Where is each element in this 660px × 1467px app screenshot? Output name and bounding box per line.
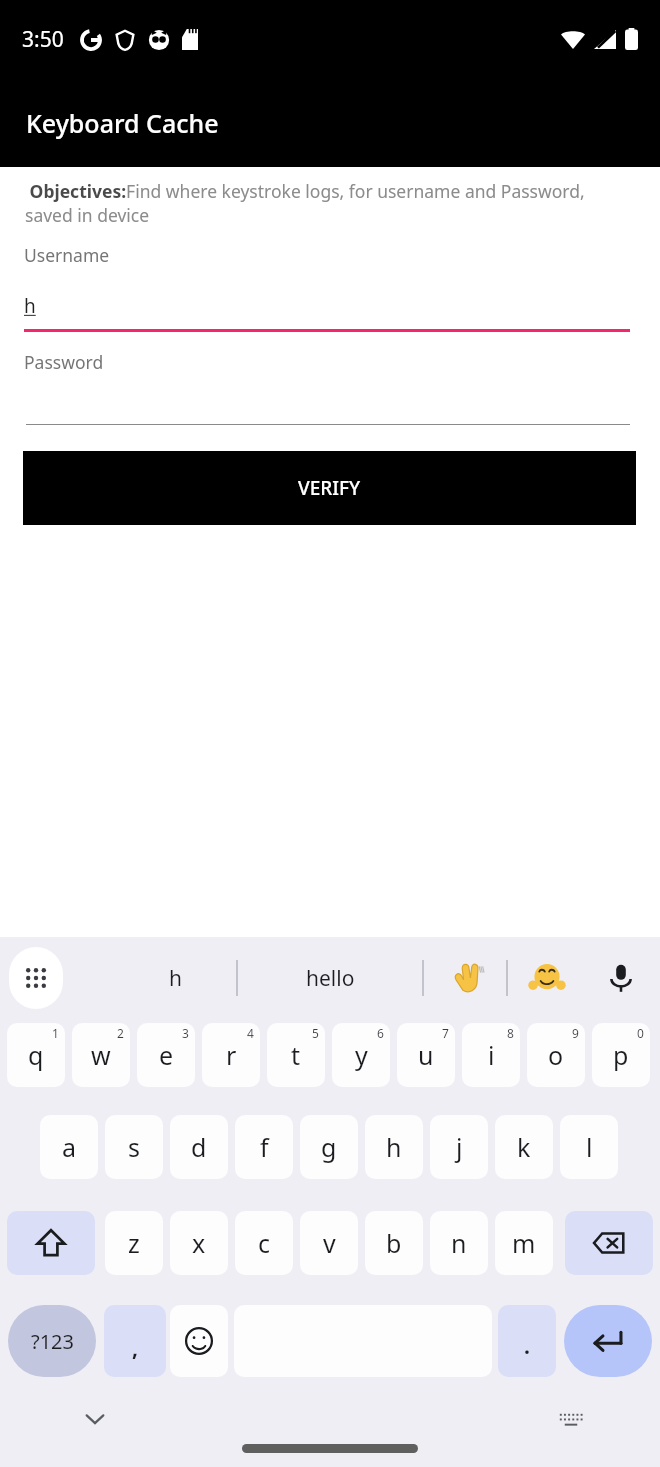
staticText: s — [128, 1130, 140, 1164]
staticText: g — [321, 1130, 337, 1164]
button[interactable]: s — [105, 1115, 163, 1179]
staticText: o — [548, 1038, 564, 1072]
staticText: m — [512, 1226, 536, 1260]
staticText: Username — [24, 243, 110, 267]
button[interactable]: f — [235, 1115, 293, 1179]
button[interactable]: h — [120, 943, 230, 1013]
button[interactable]: g — [300, 1115, 358, 1179]
staticText: VERIFY — [298, 475, 361, 501]
staticText: hello — [306, 964, 355, 993]
staticText: d — [191, 1130, 207, 1164]
staticText: ?123 — [31, 1328, 74, 1355]
staticText: 2 — [117, 1025, 124, 1041]
button[interactable]: Hide keyboard — [72, 1396, 118, 1442]
button[interactable]: v — [300, 1211, 358, 1275]
staticText: v — [323, 1226, 336, 1260]
button[interactable]: l — [560, 1115, 618, 1179]
button[interactable]: y — [332, 1023, 390, 1087]
staticText: Keyboard Cache — [26, 106, 219, 140]
button[interactable]: , — [104, 1305, 166, 1377]
button[interactable]: t — [267, 1023, 325, 1087]
staticText: r — [226, 1038, 237, 1072]
staticText: h — [169, 964, 182, 993]
staticText: Objectives:Find where keystroke logs, fo… — [25, 179, 630, 227]
staticText: f — [260, 1130, 269, 1164]
staticText: 0 — [637, 1025, 644, 1041]
button[interactable]: r — [202, 1023, 260, 1087]
staticText: y — [355, 1038, 368, 1072]
staticText: l — [586, 1130, 593, 1164]
staticText: w — [91, 1038, 111, 1072]
staticText: 7 — [442, 1025, 449, 1041]
staticText: b — [386, 1226, 402, 1260]
staticText: . — [524, 1332, 530, 1361]
staticText: 9 — [572, 1025, 579, 1041]
staticText: h — [386, 1130, 402, 1164]
button[interactable]: ?123 — [8, 1305, 96, 1377]
button[interactable]: Switch keyboard — [548, 1396, 594, 1442]
button[interactable]: e — [137, 1023, 195, 1087]
button[interactable]: d — [170, 1115, 228, 1179]
staticText: h — [24, 293, 36, 319]
staticText: z — [128, 1226, 140, 1260]
button[interactable]: o — [527, 1023, 585, 1087]
staticText: t — [291, 1038, 301, 1072]
button[interactable]: Shift — [7, 1211, 95, 1275]
staticText: k — [517, 1130, 531, 1164]
button[interactable]: Waving hand emoji — [440, 951, 494, 1005]
staticText: 3:50 — [22, 25, 64, 54]
button[interactable]: Backspace — [565, 1211, 653, 1275]
button[interactable]: Enter — [564, 1305, 652, 1377]
button[interactable]: hello — [262, 943, 398, 1013]
staticText: u — [418, 1038, 434, 1072]
button[interactable]: h — [24, 293, 630, 332]
staticText: , — [132, 1334, 138, 1363]
staticText: 8 — [507, 1025, 514, 1041]
button[interactable]: VERIFY — [23, 451, 636, 525]
staticText: p — [613, 1038, 629, 1072]
button[interactable]: z — [105, 1211, 163, 1275]
staticText: 5 — [312, 1025, 319, 1041]
button[interactable]: Hugging face emoji — [520, 951, 574, 1005]
staticText: 1 — [52, 1025, 59, 1041]
button[interactable]: u — [397, 1023, 455, 1087]
button[interactable]: i — [462, 1023, 520, 1087]
button[interactable]: k — [495, 1115, 553, 1179]
staticText: e — [159, 1038, 174, 1072]
staticText: x — [192, 1226, 206, 1260]
staticText: i — [488, 1038, 495, 1072]
staticText: n — [451, 1226, 467, 1260]
button[interactable]: b — [365, 1211, 423, 1275]
button[interactable]: More options — [9, 947, 63, 1009]
button[interactable]: j — [430, 1115, 488, 1179]
button[interactable]: c — [235, 1211, 293, 1275]
staticText: c — [258, 1226, 271, 1260]
button[interactable]: x — [170, 1211, 228, 1275]
button[interactable]: m — [495, 1211, 553, 1275]
staticText: 6 — [377, 1025, 384, 1041]
button[interactable]: h — [365, 1115, 423, 1179]
staticText: a — [62, 1130, 77, 1164]
staticText: 4 — [247, 1025, 254, 1041]
staticText: j — [456, 1130, 463, 1164]
staticText: Password — [24, 350, 104, 374]
button[interactable]: . — [498, 1305, 556, 1377]
button[interactable]: Voice input — [596, 953, 646, 1003]
button[interactable]: n — [430, 1211, 488, 1275]
button[interactable]: q — [7, 1023, 65, 1087]
button[interactable]: p — [592, 1023, 650, 1087]
button[interactable]: w — [72, 1023, 130, 1087]
button[interactable]: a — [40, 1115, 98, 1179]
staticText: 3 — [182, 1025, 189, 1041]
staticText: q — [28, 1038, 44, 1072]
button[interactable]: Emoji — [170, 1305, 228, 1377]
